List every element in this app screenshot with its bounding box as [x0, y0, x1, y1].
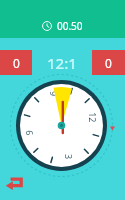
button[interactable]: 0	[0, 50, 32, 75]
staticText: 0	[13, 55, 20, 71]
staticText: 12:1	[47, 53, 77, 73]
button[interactable]: 0	[92, 50, 125, 75]
staticText: 00.50	[57, 19, 83, 33]
button[interactable]: Undo	[4, 172, 26, 194]
staticText: 0	[105, 55, 112, 71]
